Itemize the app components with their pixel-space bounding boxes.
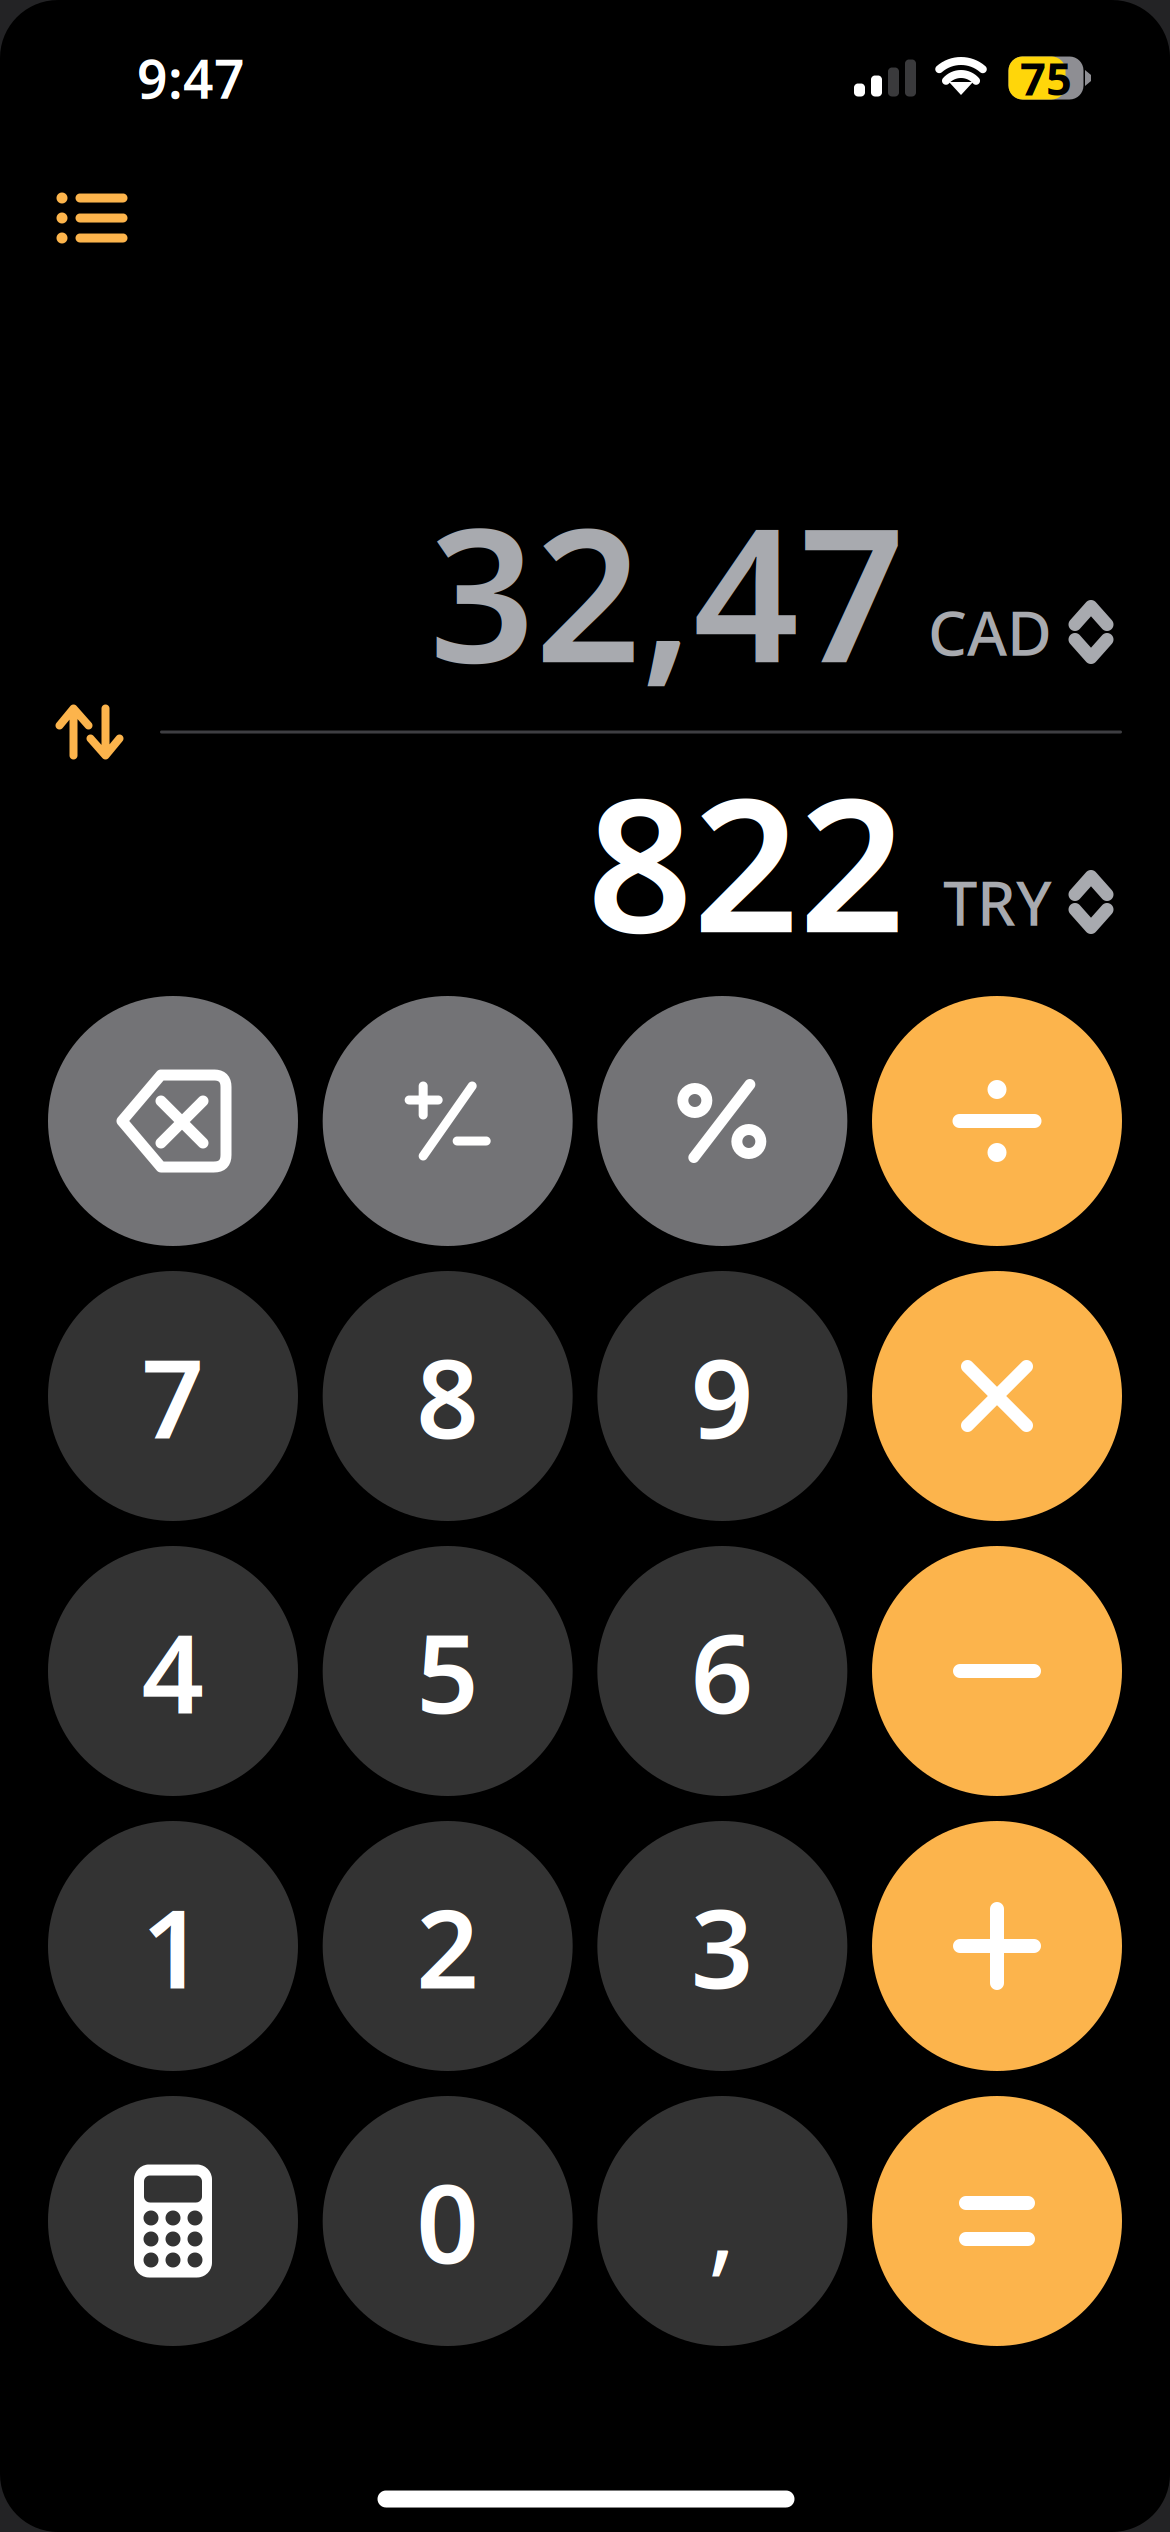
button[interactable]: Percent <box>597 996 847 1246</box>
button[interactable]: CAD <box>923 578 1113 686</box>
staticText: TRY <box>943 861 1052 943</box>
button[interactable]: 5 <box>323 1546 573 1796</box>
button[interactable]: 1 <box>48 1821 298 2071</box>
button[interactable]: Decimal separator <box>597 2096 847 2346</box>
button[interactable]: 0 <box>323 2096 573 2346</box>
button[interactable]: Plus <box>872 1821 1122 2071</box>
button[interactable]: TRY <box>923 848 1113 956</box>
button[interactable]: 7 <box>48 1271 298 1521</box>
staticText: 7 <box>141 1323 204 1469</box>
staticText: 6 <box>691 1598 754 1744</box>
button[interactable]: Divide <box>872 996 1122 1246</box>
staticText: 32,47 <box>429 467 905 713</box>
button[interactable]: Plus minus <box>323 996 573 1246</box>
button[interactable]: 8 <box>323 1271 573 1521</box>
button[interactable]: Swap currencies <box>39 682 139 782</box>
staticText: 2 <box>416 1873 479 2019</box>
button[interactable]: 4 <box>48 1546 298 1796</box>
button[interactable]: 9 <box>597 1271 847 1521</box>
staticText: 75 <box>1020 48 1072 108</box>
staticText: 8 <box>416 1323 479 1469</box>
staticText: 822 <box>587 737 905 983</box>
staticText: 9:47 <box>137 43 245 113</box>
staticText: CAD <box>928 591 1052 673</box>
button[interactable]: Delete <box>48 996 298 1246</box>
button[interactable]: 2 <box>323 1821 573 2071</box>
button[interactable]: Calculator <box>48 2096 298 2346</box>
button[interactable]: Multiply <box>872 1271 1122 1521</box>
button[interactable]: Equals <box>872 2096 1122 2346</box>
staticText: 5 <box>416 1598 479 1744</box>
staticText: 9 <box>691 1323 754 1469</box>
staticText: 0 <box>416 2148 479 2294</box>
button[interactable]: Currency list <box>32 163 152 273</box>
staticText: 1 <box>141 1873 204 2019</box>
staticText: 4 <box>141 1598 204 1744</box>
button[interactable]: 6 <box>597 1546 847 1796</box>
staticText: , <box>708 2150 737 2292</box>
button[interactable]: 3 <box>597 1821 847 2071</box>
staticText: 3 <box>691 1873 754 2019</box>
button[interactable]: Minus <box>872 1546 1122 1796</box>
